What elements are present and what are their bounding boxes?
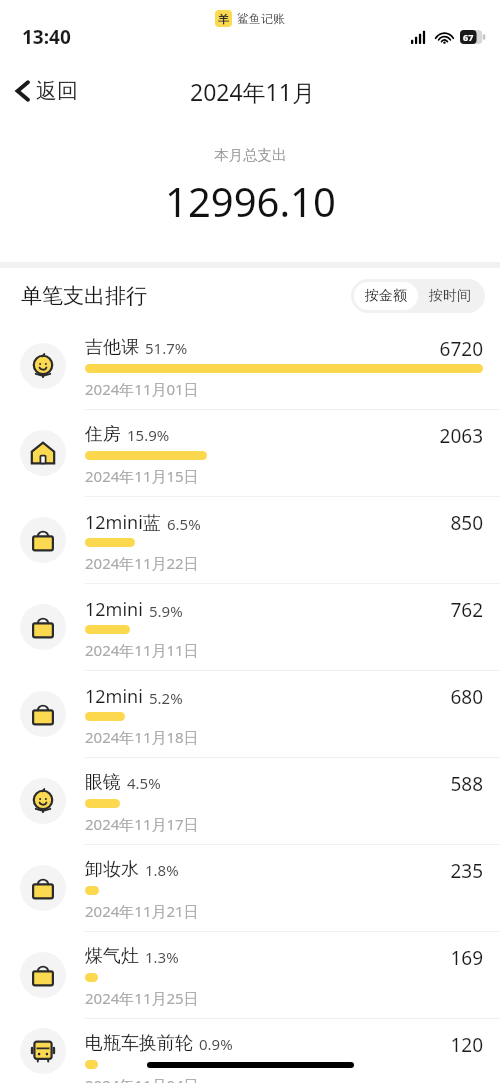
staticText: 169 [450, 945, 483, 971]
button[interactable]: 12mini [0, 671, 500, 757]
staticText: 762 [450, 597, 483, 623]
staticText: 按金额 [365, 287, 407, 305]
staticText: 4.5% [127, 773, 161, 793]
staticText: 本月总支出 [214, 146, 287, 164]
staticText: 吉他课 [85, 336, 139, 359]
button[interactable]: 吉他课 [0, 323, 500, 409]
staticText: 2024年11月15日 [85, 466, 199, 486]
staticText: 588 [450, 771, 483, 797]
button[interactable]: 12mini蓝 [0, 497, 500, 583]
button[interactable]: 眼镜 [0, 758, 500, 844]
staticText: 2024年11月04日 [85, 1075, 199, 1083]
button[interactable]: 按金额 [354, 282, 418, 310]
staticText: 2024年11月21日 [85, 901, 199, 921]
staticText: 12996.10 [165, 174, 336, 228]
staticText: 67 [463, 31, 474, 43]
staticText: 卸妆水 [85, 858, 139, 881]
staticText: 2024年11月 [190, 76, 315, 107]
staticText: 51.7% [145, 338, 188, 358]
staticText: 6720 [439, 336, 483, 362]
button[interactable]: 返回 [0, 72, 90, 110]
staticText: 煤气灶 [85, 945, 139, 968]
staticText: 返回 [36, 78, 78, 104]
staticText: 12mini [85, 684, 143, 709]
button[interactable]: 住房 [0, 410, 500, 496]
staticText: 羊 [218, 12, 229, 26]
button[interactable]: 卸妆水 [0, 845, 500, 931]
staticText: 2024年11月22日 [85, 553, 199, 573]
button[interactable]: 12mini [0, 584, 500, 670]
staticText: 13:40 [22, 24, 71, 50]
button[interactable]: 煤气灶 [0, 932, 500, 1018]
staticText: 按时间 [429, 287, 471, 305]
button[interactable]: 按时间 [418, 282, 482, 310]
staticText: 2024年11月25日 [85, 988, 199, 1008]
staticText: 2024年11月18日 [85, 727, 199, 747]
staticText: 电瓶车换前轮 [85, 1032, 193, 1055]
staticText: 1.8% [145, 860, 179, 880]
staticText: 眼镜 [85, 771, 121, 794]
staticText: 5.2% [149, 688, 183, 708]
staticText: 5.9% [149, 601, 183, 621]
staticText: 120 [450, 1032, 483, 1058]
staticText: 6.5% [167, 514, 201, 534]
staticText: 2024年11月01日 [85, 379, 199, 399]
staticText: 2024年11月11日 [85, 640, 199, 660]
staticText: 鲨鱼记账 [237, 11, 285, 26]
button[interactable]: 电瓶车换前轮 [0, 1019, 500, 1083]
staticText: 0.9% [199, 1034, 233, 1054]
staticText: 住房 [85, 423, 121, 446]
staticText: 850 [450, 510, 483, 536]
staticText: 12mini [85, 597, 143, 622]
staticText: 680 [450, 684, 483, 710]
staticText: 235 [450, 858, 483, 884]
staticText: 12mini蓝 [85, 510, 161, 535]
staticText: 单笔支出排行 [21, 283, 147, 309]
staticText: 2063 [439, 423, 483, 449]
staticText: 2024年11月17日 [85, 814, 199, 834]
staticText: 1.3% [145, 947, 179, 967]
staticText: 15.9% [127, 425, 170, 445]
